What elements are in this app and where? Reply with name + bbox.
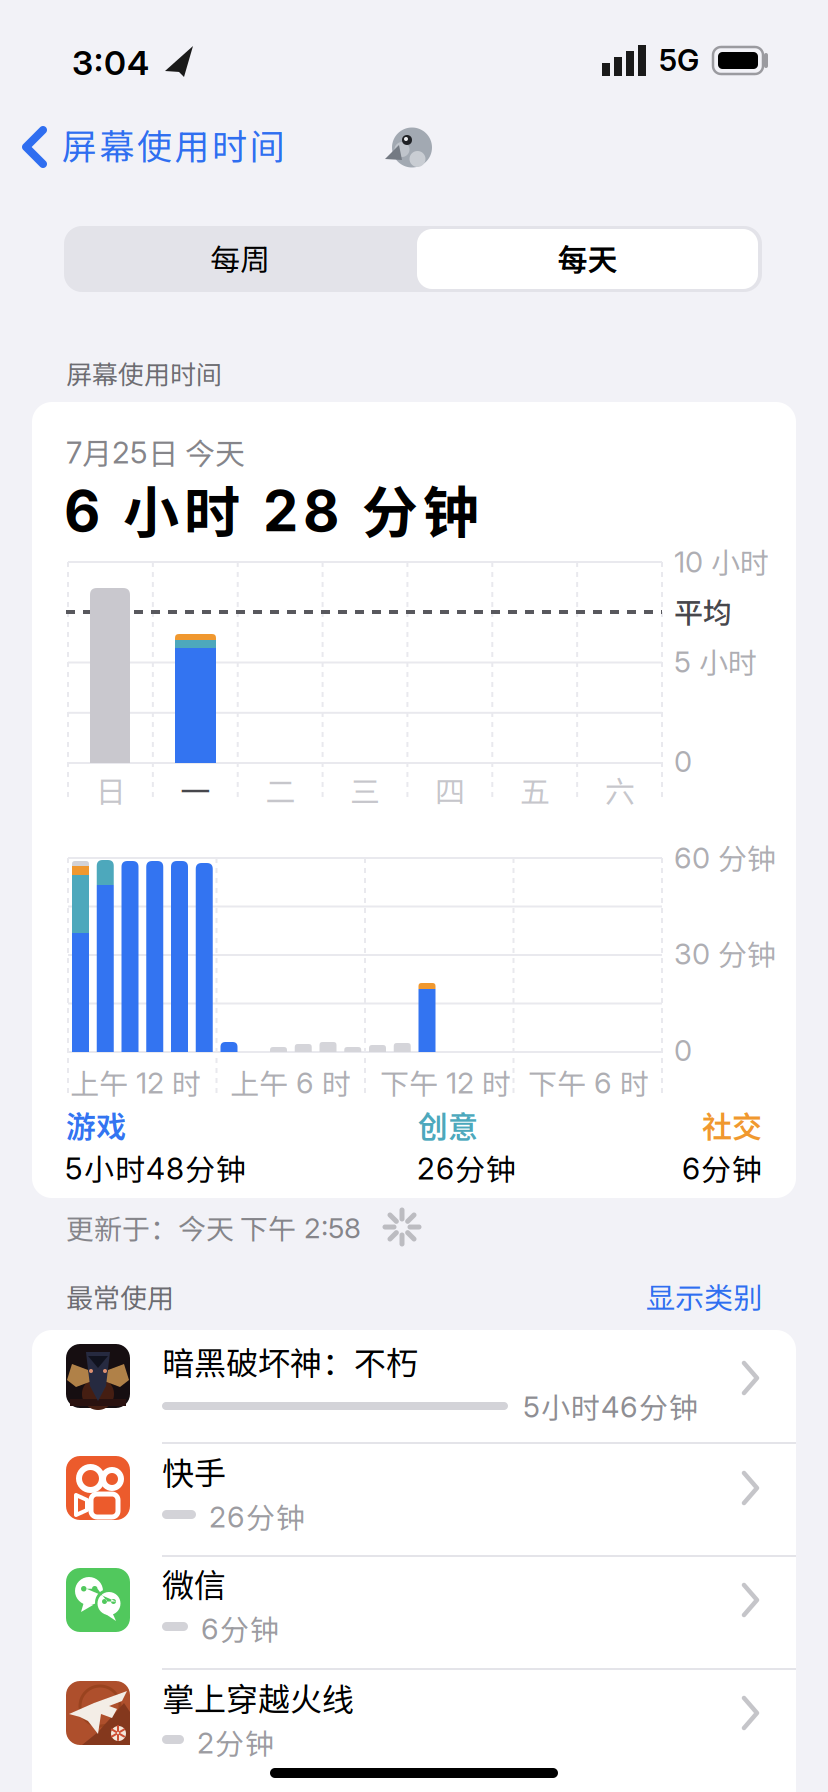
- staticText: 六: [605, 768, 635, 811]
- staticText: 5小时48分钟: [65, 1146, 246, 1189]
- staticText: 屏幕使用时间: [66, 354, 222, 392]
- staticText: 6 小时 28 分钟: [64, 468, 479, 549]
- staticText: 下午 6 时: [528, 1061, 649, 1103]
- staticText: 5G: [659, 42, 699, 78]
- staticText: 每周: [210, 236, 270, 279]
- staticText: 快手: [162, 1448, 226, 1494]
- staticText: 0: [674, 1033, 692, 1068]
- staticText: 创意: [418, 1103, 478, 1146]
- staticText: 每天: [557, 236, 617, 279]
- staticText: 微信: [162, 1560, 226, 1606]
- staticText: 2分钟: [197, 1721, 274, 1763]
- staticText: 四: [435, 768, 465, 811]
- staticText: 三: [350, 768, 380, 811]
- staticText: 暗黑破坏神：不朽: [162, 1338, 418, 1384]
- staticText: 10 小时: [674, 540, 769, 582]
- staticText: 二: [265, 768, 295, 811]
- staticText: 26分钟: [417, 1146, 516, 1189]
- staticText: 一: [180, 768, 210, 811]
- staticText: 社交: [702, 1103, 762, 1146]
- staticText: 26分钟: [209, 1495, 305, 1537]
- staticText: 6分钟: [682, 1146, 762, 1189]
- staticText: 0: [674, 744, 692, 779]
- staticText: 游戏: [66, 1103, 126, 1146]
- staticText: 上午 12 时: [70, 1061, 201, 1103]
- staticText: 平均: [674, 590, 732, 632]
- staticText: 日: [95, 768, 125, 811]
- staticText: 3:04: [72, 42, 149, 83]
- staticText: 掌上穿越火线: [162, 1674, 354, 1720]
- staticText: 7月25日 今天: [66, 430, 245, 473]
- staticText: 30 分钟: [674, 932, 776, 974]
- staticText: 最常使用: [66, 1277, 174, 1316]
- staticText: 5小时46分钟: [523, 1385, 698, 1427]
- staticText: 屏幕使用时间: [62, 119, 284, 170]
- staticText: 5 小时: [674, 640, 757, 682]
- staticText: 6分钟: [201, 1607, 279, 1649]
- staticText: 五: [520, 768, 550, 811]
- staticText: 上午 6 时: [230, 1061, 351, 1103]
- staticText: 更新于：今天 下午 2:58: [66, 1207, 361, 1247]
- staticText: 显示类别: [646, 1275, 762, 1317]
- staticText: 60 分钟: [674, 836, 776, 878]
- staticText: 下午 12 时: [380, 1061, 511, 1103]
